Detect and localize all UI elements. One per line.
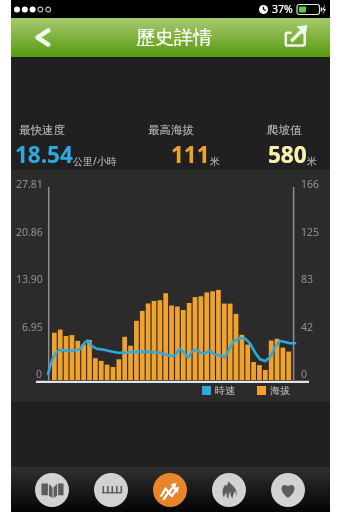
staticText: 37% bbox=[272, 2, 293, 16]
staticText: 111 bbox=[171, 139, 210, 170]
button[interactable]: Share bbox=[284, 18, 330, 57]
staticText: 爬坡值 bbox=[267, 123, 302, 137]
staticText: 公里/小時 bbox=[73, 154, 117, 168]
staticText: 166 bbox=[301, 177, 320, 191]
staticText: 6.95 bbox=[22, 320, 43, 334]
staticText: 米 bbox=[210, 155, 220, 168]
staticText: 時速 bbox=[215, 384, 235, 397]
staticText: 0 bbox=[301, 367, 308, 381]
staticText: 米 bbox=[307, 155, 317, 168]
button[interactable]: Map bbox=[35, 473, 69, 507]
button[interactable]: Back bbox=[11, 18, 59, 57]
button[interactable]: Chart bbox=[94, 473, 128, 507]
staticText: 最快速度 bbox=[19, 123, 65, 137]
staticText: 0 bbox=[36, 367, 43, 381]
button[interactable]: Heart rate bbox=[271, 473, 305, 507]
staticText: 海拔 bbox=[270, 384, 290, 397]
staticText: 13.90 bbox=[16, 272, 43, 286]
staticText: 最高海拔 bbox=[148, 123, 194, 137]
staticText: 20.86 bbox=[16, 225, 43, 239]
staticText: 83 bbox=[301, 272, 314, 286]
staticText: 27.81 bbox=[16, 177, 43, 191]
staticText: 125 bbox=[301, 225, 320, 239]
staticText: 18.54 bbox=[15, 139, 73, 170]
staticText: 42 bbox=[301, 320, 314, 334]
button[interactable]: Calories bbox=[212, 473, 246, 507]
staticText: 歷史詳情 bbox=[136, 26, 212, 50]
staticText: 580 bbox=[268, 139, 307, 170]
button[interactable]: Activity bbox=[153, 473, 187, 507]
